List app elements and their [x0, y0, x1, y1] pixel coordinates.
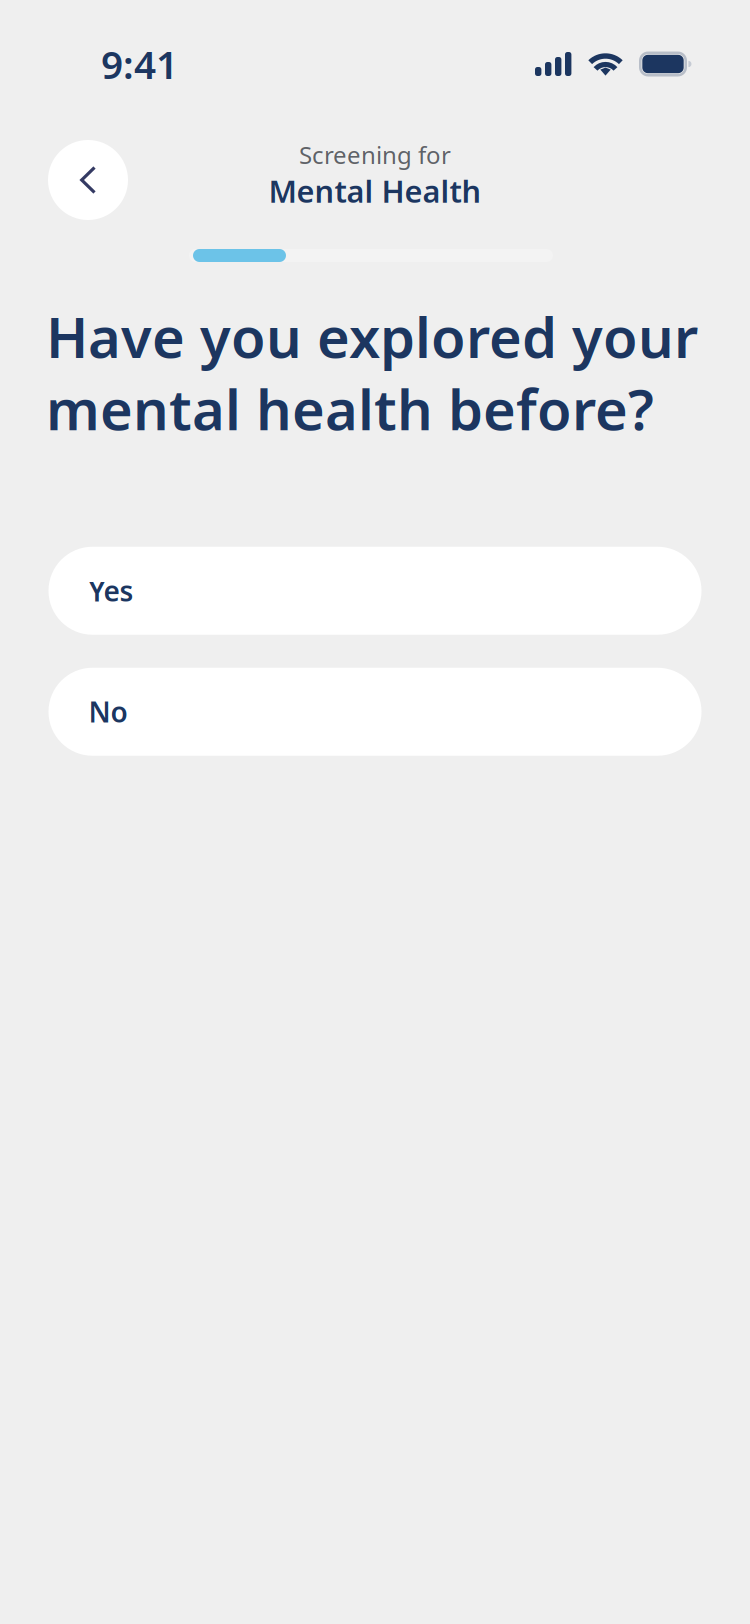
button[interactable]: Yes	[48, 547, 701, 635]
staticText: 9:41	[101, 38, 178, 90]
staticText: Mental Health	[268, 171, 481, 211]
button[interactable]: No	[48, 668, 701, 756]
staticText: No	[88, 693, 127, 730]
button[interactable]: Back	[48, 140, 128, 220]
staticText: Have you explored your mental health bef…	[46, 299, 698, 446]
staticText: Screening for	[299, 139, 451, 171]
staticText: Yes	[88, 572, 133, 609]
